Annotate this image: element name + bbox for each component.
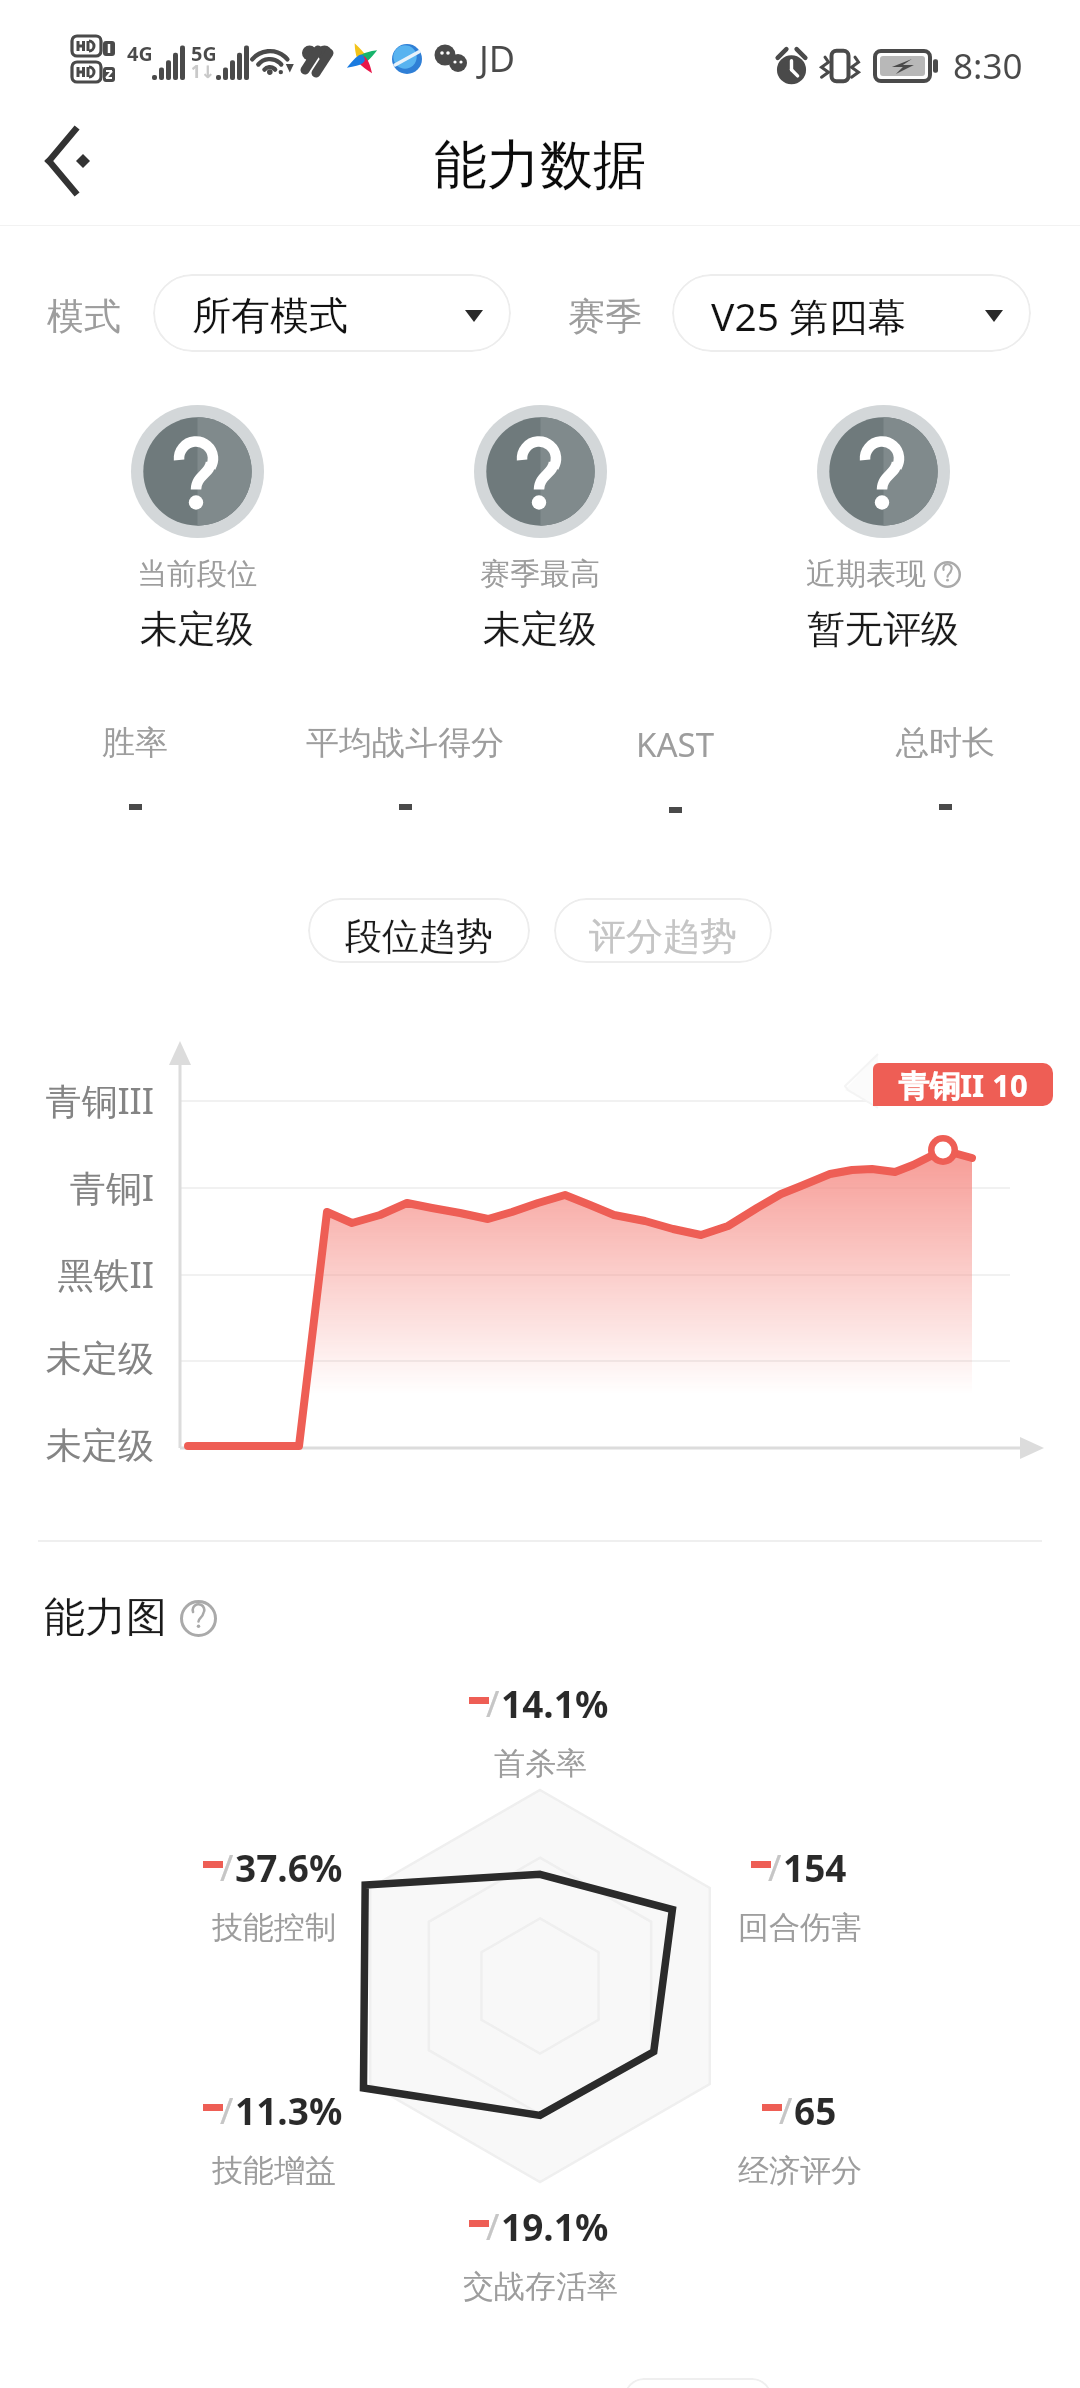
staticText: 胜率 [102,722,168,764]
staticText: 8:30 [953,42,1023,90]
staticText: 技能控制 [212,1908,336,1947]
staticText: 经济评分 [738,2151,862,2190]
button[interactable]: 所有模式 [153,274,511,352]
staticText: 技能增益 [212,2151,336,2190]
staticText: 未定级 [140,605,254,653]
staticText: KAST [636,722,714,767]
button[interactable]: 评分趋势 [554,898,772,963]
staticText: 总时长 [896,722,995,764]
staticText: 评分趋势 [589,913,737,960]
staticText: 青铜II 10 [898,1064,1028,1106]
button[interactable]: Help [180,1600,217,1637]
staticText: 赛季 [568,293,642,340]
staticText: / [486,1679,500,1728]
staticText: 19.1% [501,2201,609,2251]
staticText: 154 [783,1842,847,1892]
staticText: 首杀率 [494,1744,587,1783]
staticText: 青铜III [0,1076,154,1125]
staticText: JD [479,34,516,83]
staticText: 暂无评级 [807,605,959,653]
staticText: 未定级 [0,1423,154,1468]
staticText: 11.3% [235,2085,343,2135]
staticText: 段位趋势 [345,913,493,960]
button[interactable]: Back [20,113,116,209]
staticText: 能力数据 [434,132,646,199]
button[interactable]: 段位趋势 [308,898,530,963]
staticText: / [768,1843,782,1892]
staticText: V25 第四幕 [711,289,907,342]
staticText: / [220,1843,234,1892]
staticText: 5G [191,40,215,67]
staticText: 当前段位 [137,555,257,593]
staticText: 平均战斗得分 [306,722,504,764]
button[interactable]: Help [934,561,961,588]
staticText: 赛季最高 [480,555,600,593]
staticText: 青铜I [0,1163,154,1212]
button[interactable]: V25 第四幕 [672,274,1031,352]
staticText: 65 [794,2085,837,2135]
staticText: 黑铁II [0,1250,154,1299]
staticText: 4G [127,40,151,67]
staticText: / [779,2086,793,2135]
staticText: 所有模式 [192,291,348,340]
staticText: 未定级 [0,1336,154,1381]
staticText: 37.6% [235,1842,343,1892]
staticText: 交战存活率 [463,2267,618,2306]
staticText: 1↓ [191,60,215,83]
staticText: / [486,2202,500,2251]
staticText: / [220,2086,234,2135]
staticText: 14.1% [501,1678,609,1728]
staticText: 未定级 [483,605,597,653]
staticText: 回合伤害 [738,1908,862,1947]
staticText: 模式 [47,293,121,340]
staticText: 近期表现 [806,555,926,593]
staticText: 能力图 [44,1592,167,1644]
